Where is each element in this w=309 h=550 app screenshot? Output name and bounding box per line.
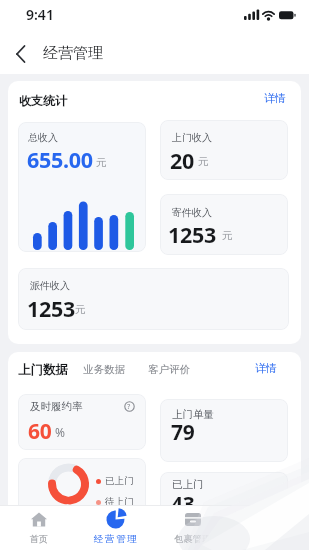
button[interactable]: 详情 (260, 88, 300, 110)
staticText: ? (127, 401, 131, 411)
staticText: 79 (171, 418, 195, 447)
button[interactable]: 包裹管理 (161, 505, 225, 550)
staticText: 经营管理 (84, 533, 148, 545)
staticText: 1253 (168, 220, 216, 249)
button[interactable]: 我的 (238, 505, 302, 550)
staticText: 9:41 (26, 5, 54, 24)
staticText: 总收入 (28, 131, 58, 144)
staticText: 收支统计 (19, 93, 67, 108)
staticText: 已上门 (172, 478, 204, 491)
staticText: 业务数据 (83, 363, 125, 376)
staticText: 60 (28, 417, 52, 446)
staticText: 元 (75, 303, 86, 316)
staticText: 元 (222, 229, 233, 242)
button[interactable]: 业务数据 (76, 356, 138, 382)
staticText: 元 (96, 156, 107, 169)
staticText: 寄件收入 (172, 206, 212, 219)
staticText: 已上门 (105, 475, 134, 487)
staticText: 元 (198, 155, 209, 168)
button[interactable]: 客户评价 (141, 356, 203, 382)
staticText: 详情 (255, 361, 277, 375)
staticText: 及时履约率 (30, 400, 83, 413)
button[interactable]: 首页 (7, 505, 71, 550)
button[interactable]: 详情 (251, 357, 291, 379)
staticText: 包裹管理 (161, 533, 225, 544)
staticText: 20 (170, 146, 194, 175)
staticText: 首页 (7, 533, 71, 544)
staticText: 我的 (238, 533, 302, 544)
staticText: 经营管理 (43, 44, 103, 63)
staticText: 655.00 (27, 145, 93, 174)
button[interactable]: 上门数据 (12, 356, 76, 382)
staticText: 详情 (264, 91, 286, 105)
staticText: 1253 (27, 294, 75, 323)
staticText: 待上门 (105, 496, 134, 508)
button[interactable] (8, 40, 36, 68)
button[interactable]: 经营管理 (84, 505, 148, 550)
staticText: 上门收入 (172, 131, 212, 144)
staticText: 上门数据 (18, 362, 68, 378)
staticText: 派件收入 (30, 279, 70, 292)
staticText: 43 (171, 490, 195, 519)
staticText: % (55, 424, 65, 440)
staticText: 客户评价 (148, 363, 190, 376)
staticText: 上门单量 (172, 408, 214, 421)
